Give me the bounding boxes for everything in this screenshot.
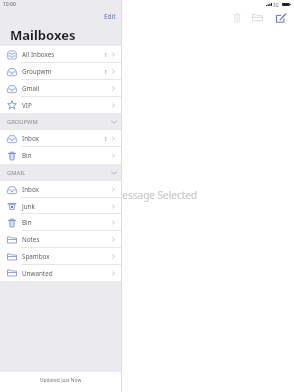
button[interactable]: Bin bbox=[0, 147, 122, 164]
staticText: 10:00 bbox=[3, 1, 16, 8]
staticText: Junk bbox=[22, 202, 35, 211]
button[interactable]: Spambox bbox=[0, 248, 122, 265]
staticText: Bin bbox=[22, 218, 32, 227]
staticText: Unwanted bbox=[22, 269, 53, 278]
button[interactable]: Notes bbox=[0, 231, 122, 248]
button[interactable]: Delete bbox=[229, 10, 244, 25]
staticText: Updated Just Now bbox=[40, 377, 82, 384]
button[interactable]: Gmail bbox=[0, 80, 122, 97]
staticText: Groupwm bbox=[22, 67, 52, 76]
staticText: VIP bbox=[22, 101, 32, 110]
button[interactable]: Bin bbox=[0, 214, 122, 231]
staticText: 1 bbox=[104, 68, 108, 76]
staticText: GROUPWM bbox=[7, 118, 38, 126]
staticText: Spambox bbox=[22, 252, 50, 261]
staticText: Inbox bbox=[22, 185, 39, 194]
button[interactable]: Move to folder bbox=[250, 10, 265, 25]
staticText: 1 bbox=[104, 135, 108, 143]
button[interactable]: Unwanted bbox=[0, 265, 122, 281]
button[interactable]: Compose bbox=[273, 10, 288, 25]
staticText: 1 bbox=[104, 51, 108, 59]
button[interactable]: VIP bbox=[0, 97, 122, 113]
staticText: 3G bbox=[273, 2, 279, 8]
button[interactable]: Junk bbox=[0, 198, 122, 214]
staticText: GMAIL bbox=[7, 169, 26, 177]
staticText: Mailboxes bbox=[10, 26, 76, 44]
button[interactable]: Inbox bbox=[0, 181, 122, 198]
staticText: Inbox bbox=[22, 134, 39, 143]
staticText: Bin bbox=[22, 151, 32, 160]
button[interactable]: Edit bbox=[98, 12, 122, 21]
button[interactable]: All Inboxes bbox=[0, 46, 122, 63]
staticText: All Inboxes bbox=[22, 50, 55, 59]
staticText: No Message Selected bbox=[97, 188, 198, 202]
button[interactable]: Inbox bbox=[0, 130, 122, 147]
staticText: Edit bbox=[104, 12, 116, 21]
staticText: Notes bbox=[22, 235, 40, 244]
staticText: Gmail bbox=[22, 84, 40, 93]
button[interactable]: Groupwm bbox=[0, 63, 122, 80]
